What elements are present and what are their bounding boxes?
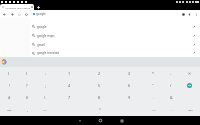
button[interactable]: ABC xyxy=(0,103,18,115)
button[interactable]: 7 xyxy=(54,91,84,103)
button[interactable]: 3 xyxy=(114,67,144,79)
button[interactable]: Reload xyxy=(23,11,30,18)
button[interactable]: More options xyxy=(193,11,200,18)
staticText: ABC xyxy=(7,108,12,111)
staticText: ABC xyxy=(188,108,193,111)
staticText: gmail xyxy=(37,43,45,47)
button[interactable]: google xyxy=(30,22,200,31)
staticText: 6 xyxy=(128,83,131,88)
staticText: =\< xyxy=(152,108,156,111)
staticText: \ xyxy=(44,95,46,100)
button[interactable]: ? xyxy=(18,79,36,91)
button[interactable]: Extensions xyxy=(186,11,193,18)
staticText: ! xyxy=(9,83,10,88)
button[interactable]: 2 xyxy=(84,67,114,79)
staticText: # xyxy=(8,95,11,100)
button[interactable]: google maps xyxy=(30,31,200,40)
button[interactable]: 1 xyxy=(54,67,84,79)
button[interactable]: Search xyxy=(180,79,198,91)
staticText: 5 xyxy=(98,83,101,88)
staticText: ( xyxy=(8,71,10,76)
staticText: - xyxy=(170,71,172,76)
staticText: * xyxy=(152,71,154,76)
button[interactable]: & xyxy=(162,91,180,103)
button[interactable]: New tab xyxy=(9,11,16,18)
button[interactable]: " xyxy=(144,79,162,91)
button[interactable]: * xyxy=(144,67,162,79)
staticText: Notebook Task Laptop Tex xyxy=(5,6,34,9)
button[interactable]: \ xyxy=(36,91,54,103)
button[interactable]: google translate xyxy=(30,49,200,57)
button[interactable]: =\< xyxy=(145,103,163,115)
staticText: 4 xyxy=(68,83,71,88)
staticText: " xyxy=(152,83,154,88)
button[interactable]: Back xyxy=(1,11,8,18)
staticText: google translate xyxy=(37,51,60,55)
button[interactable]: Recent apps xyxy=(117,116,126,125)
staticText: 3 xyxy=(128,71,131,76)
button[interactable]: $ xyxy=(18,91,36,103)
staticText: google maps xyxy=(37,34,55,38)
button[interactable]: ABC xyxy=(181,103,199,115)
staticText: 2 xyxy=(98,71,101,76)
button[interactable]: Back xyxy=(75,116,84,125)
staticText: . xyxy=(172,107,173,112)
button[interactable]: ; xyxy=(36,79,54,91)
staticText: 8 xyxy=(98,95,101,100)
button[interactable]: ! xyxy=(0,79,18,91)
button[interactable]: Profile xyxy=(180,11,187,18)
staticText: $ xyxy=(26,95,29,100)
button[interactable]: 8 xyxy=(84,91,114,103)
staticText: ? xyxy=(26,83,28,88)
button[interactable]: 6 xyxy=(114,79,144,91)
button[interactable]: google xyxy=(31,11,179,16)
button[interactable]: Backspace xyxy=(180,67,198,79)
button[interactable]: =\< xyxy=(36,103,54,115)
staticText: google xyxy=(37,25,47,29)
button[interactable]: 4 xyxy=(54,79,84,91)
staticText: & xyxy=(170,95,173,100)
staticText: / xyxy=(170,83,172,88)
staticText: 7 xyxy=(68,95,71,100)
button[interactable]: # xyxy=(0,91,18,103)
staticText: 1 xyxy=(68,71,71,76)
button[interactable]: ) xyxy=(18,67,36,79)
button[interactable]: Notebook Task Laptop Tex xyxy=(0,4,34,10)
button[interactable]: New tab xyxy=(35,4,42,10)
staticText: google xyxy=(36,12,46,16)
button[interactable]: 9 xyxy=(114,91,144,103)
staticText: : xyxy=(45,71,46,76)
staticText: 9 xyxy=(128,95,131,100)
staticText: ; xyxy=(45,83,46,88)
staticText: , xyxy=(27,107,28,112)
button[interactable]: Home xyxy=(96,116,105,125)
staticText: . xyxy=(153,95,154,100)
button[interactable]: 5 xyxy=(84,79,114,91)
staticText: =\< xyxy=(43,108,47,111)
button[interactable]: Home xyxy=(16,11,23,18)
staticText: ) xyxy=(26,71,28,76)
button[interactable]: gmail xyxy=(30,40,200,49)
button[interactable]: ( xyxy=(0,67,18,79)
button[interactable]: / xyxy=(162,79,180,91)
